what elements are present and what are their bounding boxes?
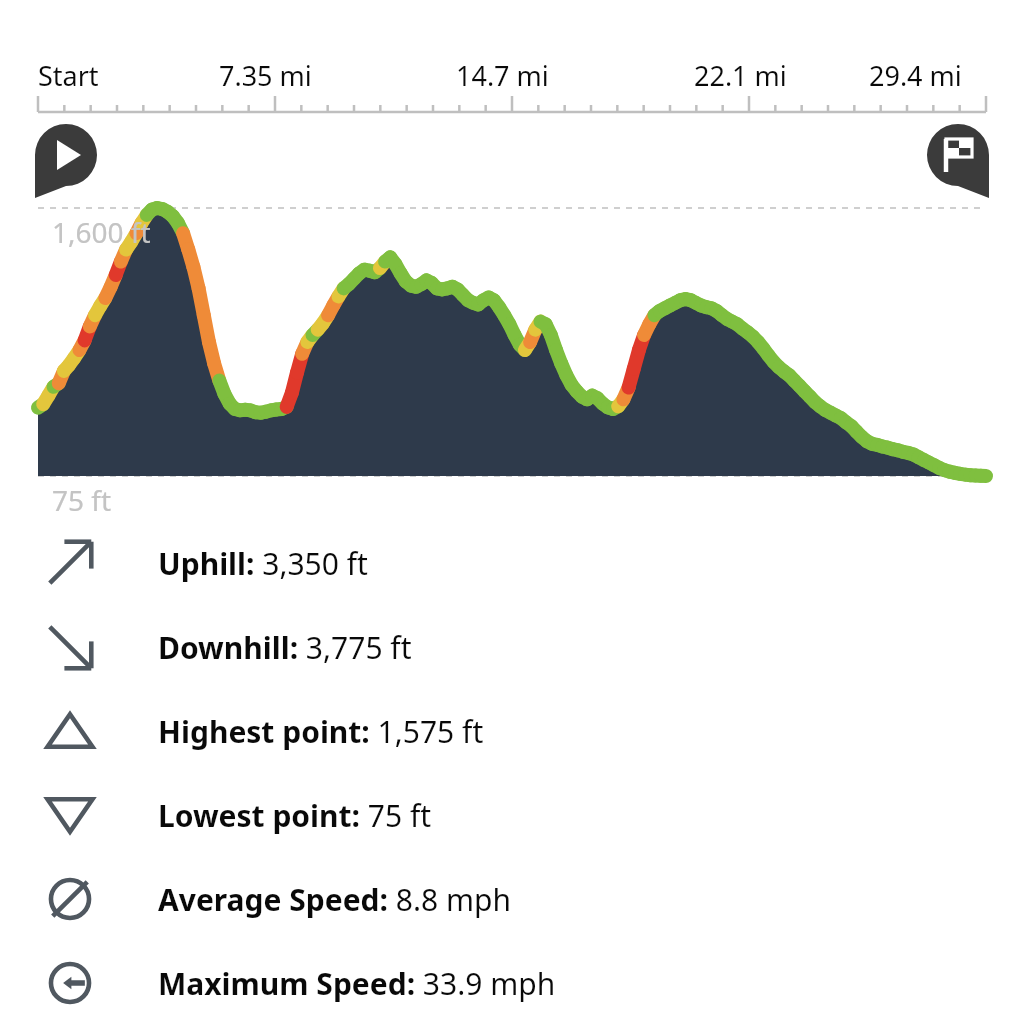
button[interactable]: Highest point: 1,575 ft bbox=[0, 689, 1024, 773]
button[interactable]: Finish of route bbox=[925, 124, 989, 188]
button[interactable]: Lowest point: 75 ft bbox=[0, 773, 1024, 857]
staticText: 22.1 mi bbox=[694, 57, 787, 94]
staticText: Maximum Speed: 33.9 mph bbox=[158, 963, 556, 1004]
staticText: 29.4 mi bbox=[869, 57, 962, 94]
staticText: Average Speed: 8.8 mph bbox=[158, 879, 511, 920]
button[interactable]: Start of route bbox=[35, 124, 99, 188]
staticText: Uphill: 3,350 ft bbox=[158, 543, 368, 584]
staticText: 1,600 ft bbox=[52, 213, 151, 251]
staticText: Lowest point: 75 ft bbox=[158, 795, 432, 836]
button[interactable]: Average Speed: 8.8 mph bbox=[0, 857, 1024, 941]
staticText: Start bbox=[38, 57, 99, 94]
button[interactable]: Downhill: 3,775 ft bbox=[0, 605, 1024, 689]
staticText: Highest point: 1,575 ft bbox=[158, 711, 484, 752]
staticText: Downhill: 3,775 ft bbox=[158, 627, 412, 668]
staticText: 14.7 mi bbox=[456, 57, 549, 94]
staticText: 75 ft bbox=[52, 481, 112, 519]
staticText: 7.35 mi bbox=[219, 57, 312, 94]
button[interactable]: Maximum Speed: 33.9 mph bbox=[0, 941, 1024, 1023]
button[interactable]: Uphill: 3,350 ft bbox=[0, 521, 1024, 605]
